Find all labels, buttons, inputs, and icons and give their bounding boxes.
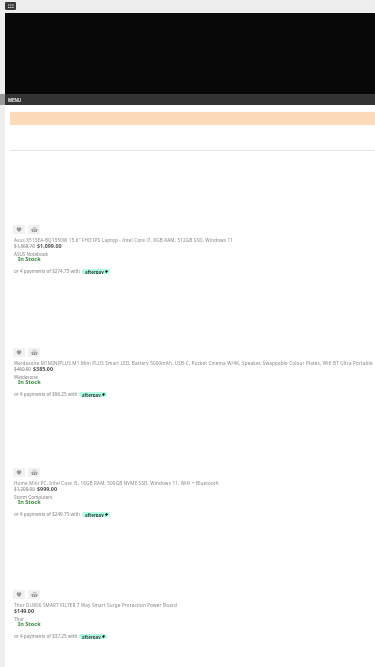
staticText: afterpay: [85, 269, 104, 274]
staticText: Weidasone M1MINIPLUS M1 Mini PLUS Smart …: [14, 360, 373, 366]
staticText: or 4 payments of $249.75 with: [14, 511, 82, 517]
button[interactable]: Add to cart: [28, 348, 40, 357]
staticText: Home Mini PC, Intel Core i5, 16GB RAM, 5…: [14, 480, 219, 486]
button[interactable]: Afterpay: [79, 392, 107, 397]
button[interactable]: MENU: [5, 94, 375, 105]
staticText: Weidasone: [14, 374, 38, 380]
staticText: $1,099.00: [37, 242, 62, 249]
staticText: $385.00: [33, 365, 54, 372]
staticText: Thor DU800 SMART FILTER 7 Way Smart Surg…: [14, 602, 177, 608]
staticText: $999.00: [37, 485, 58, 492]
staticText: or 4 payments of $96.25 with: [14, 391, 79, 397]
staticText: Asus X515EA-BQ1550W 15.6" FHD IPS Laptop…: [14, 237, 234, 243]
button[interactable]: Add to wishlist: [0, 225, 375, 275]
button[interactable]: Add to wishlist: [0, 468, 375, 518]
staticText: $460.00: [14, 366, 31, 372]
button[interactable]: Afterpay: [79, 634, 107, 639]
staticText: $1,200.00: [14, 486, 35, 492]
staticText: $149.00: [14, 607, 35, 614]
staticText: or 4 payments of $274.75 with: [14, 268, 82, 274]
staticText: MENU: [8, 97, 22, 103]
staticText: or 4 payments of $37.25 with: [14, 633, 79, 639]
staticText: In Stock: [18, 378, 41, 386]
staticText: ASUS Notebook: [14, 251, 48, 257]
staticText: afterpay: [82, 634, 101, 639]
button[interactable]: Add to wishlist: [13, 225, 25, 234]
staticText: In Stock: [18, 498, 41, 506]
button[interactable]: Add to wishlist: [0, 590, 375, 640]
staticText: Thor: [14, 616, 25, 622]
staticText: $1,568.70: [14, 243, 35, 249]
button[interactable]: Site logo: [5, 2, 16, 10]
staticText: afterpay: [85, 512, 104, 517]
button[interactable]: Add to cart: [28, 590, 40, 599]
staticText: In Stock: [18, 620, 41, 628]
button[interactable]: Afterpay: [82, 269, 110, 274]
staticText: In Stock: [18, 255, 41, 263]
button[interactable]: Add to wishlist: [0, 348, 375, 398]
button[interactable]: Add to cart: [28, 225, 40, 234]
button[interactable]: Afterpay: [82, 512, 110, 517]
button[interactable]: Add to wishlist: [13, 468, 25, 477]
staticText: afterpay: [82, 392, 101, 397]
button[interactable]: Add to cart: [28, 468, 40, 477]
staticText: Storm Computers: [14, 494, 53, 500]
button[interactable]: Add to wishlist: [13, 590, 25, 599]
button[interactable]: Add to wishlist: [13, 348, 25, 357]
